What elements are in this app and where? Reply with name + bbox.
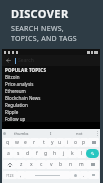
button[interactable]: Delete <box>86 160 99 169</box>
staticText: k <box>71 150 74 157</box>
staticText: r <box>33 139 36 146</box>
button[interactable]: t <box>39 138 48 147</box>
staticText: POPULAR TOPICS <box>5 67 47 73</box>
button[interactable]: More suggestions <box>94 129 100 137</box>
button[interactable]: q <box>3 138 12 147</box>
staticText: n <box>69 161 73 168</box>
button[interactable]: Space <box>25 171 70 179</box>
staticText: o <box>74 139 78 146</box>
staticText: c <box>40 161 43 168</box>
staticText: TOPICS, AND TAGS <box>11 34 77 44</box>
button[interactable]: Comma <box>17 171 25 179</box>
staticText: x <box>30 161 33 168</box>
button[interactable]: Back <box>2 55 100 66</box>
staticText: Ripple <box>5 109 19 115</box>
staticText: m <box>79 161 84 168</box>
staticText: i <box>67 139 69 146</box>
button[interactable]: Ripple <box>2 108 100 115</box>
button[interactable]: g <box>41 149 50 158</box>
button[interactable]: o <box>72 138 80 147</box>
button[interactable]: y <box>48 138 56 147</box>
button[interactable]: n <box>66 160 76 169</box>
button[interactable]: thumbs <box>7 129 36 137</box>
staticText: not <box>76 131 83 136</box>
button[interactable]: x <box>26 160 36 169</box>
button[interactable]: e <box>21 138 30 147</box>
staticText: , <box>20 172 22 179</box>
button[interactable]: k <box>68 149 77 158</box>
button[interactable]: b <box>56 160 66 169</box>
staticText: Blockchain News <box>5 95 41 101</box>
staticText: f <box>36 150 38 157</box>
button[interactable]: w <box>12 138 21 147</box>
button[interactable]: h <box>50 149 59 158</box>
button[interactable]: Follow up <box>2 115 100 122</box>
button[interactable]: m <box>76 160 86 169</box>
button[interactable]: ?123 <box>3 171 17 179</box>
button[interactable]: r <box>30 138 39 147</box>
staticText: t <box>43 139 45 146</box>
staticText: SEARCH NEWS, <box>11 24 65 34</box>
staticText: u <box>58 139 62 146</box>
staticText: Ethereum <box>5 88 26 94</box>
button[interactable]: s <box>13 149 23 158</box>
button[interactable]: Regulation <box>2 101 100 108</box>
staticText: j <box>63 150 65 157</box>
staticText: e <box>24 139 27 146</box>
button[interactable]: Keyboard options <box>88 171 99 179</box>
button[interactable]: u <box>56 138 64 147</box>
button[interactable]: c <box>36 160 46 169</box>
staticText: y <box>51 139 54 146</box>
staticText: Bitcoin <box>5 74 20 80</box>
staticText: Follow up <box>5 116 26 122</box>
button[interactable]: Emoji <box>2 129 7 137</box>
staticText: s <box>17 150 20 157</box>
staticText: a <box>7 150 10 157</box>
button[interactable]: l <box>77 149 86 158</box>
staticText: . <box>83 172 85 179</box>
staticText: Price analysis <box>5 81 34 87</box>
staticText: z <box>20 161 23 168</box>
staticText: h <box>53 150 57 157</box>
button[interactable]: d <box>23 149 32 158</box>
staticText: ⋮ <box>95 130 100 136</box>
staticText: d <box>26 150 30 157</box>
button[interactable]: Backspace <box>88 138 99 147</box>
staticText: g <box>44 150 48 157</box>
staticText: Regulation <box>5 102 28 108</box>
button[interactable]: Back <box>5 57 12 64</box>
button[interactable]: z <box>16 160 26 169</box>
staticText: I <box>50 131 52 136</box>
button[interactable]: Search <box>86 149 99 158</box>
button[interactable]: f <box>32 149 41 158</box>
button[interactable]: I <box>36 129 65 137</box>
button[interactable]: i <box>64 138 72 147</box>
button[interactable]: Blockchain News <box>2 94 100 101</box>
staticText: p <box>82 139 86 146</box>
staticText: thumbs <box>14 131 29 136</box>
button[interactable]: a <box>3 149 13 158</box>
button[interactable]: Emoji <box>70 171 80 179</box>
staticText: w <box>15 139 19 146</box>
staticText: v <box>50 161 53 168</box>
button[interactable]: v <box>46 160 56 169</box>
button[interactable]: not <box>65 129 94 137</box>
button[interactable]: Bitcoin <box>2 73 100 80</box>
staticText: DISCOVER <box>11 6 69 21</box>
button[interactable]: Ethereum <box>2 87 100 94</box>
staticText: l <box>81 150 83 157</box>
button[interactable]: Shift <box>3 160 16 169</box>
staticText: b <box>59 161 63 168</box>
button[interactable]: j <box>59 149 68 158</box>
button[interactable]: Price analysis <box>2 80 100 87</box>
button[interactable]: p <box>80 138 88 147</box>
staticText: Search <box>18 57 34 64</box>
button[interactable]: Period <box>80 171 88 179</box>
staticText: ?123 <box>6 173 14 178</box>
staticText: q <box>6 139 10 146</box>
